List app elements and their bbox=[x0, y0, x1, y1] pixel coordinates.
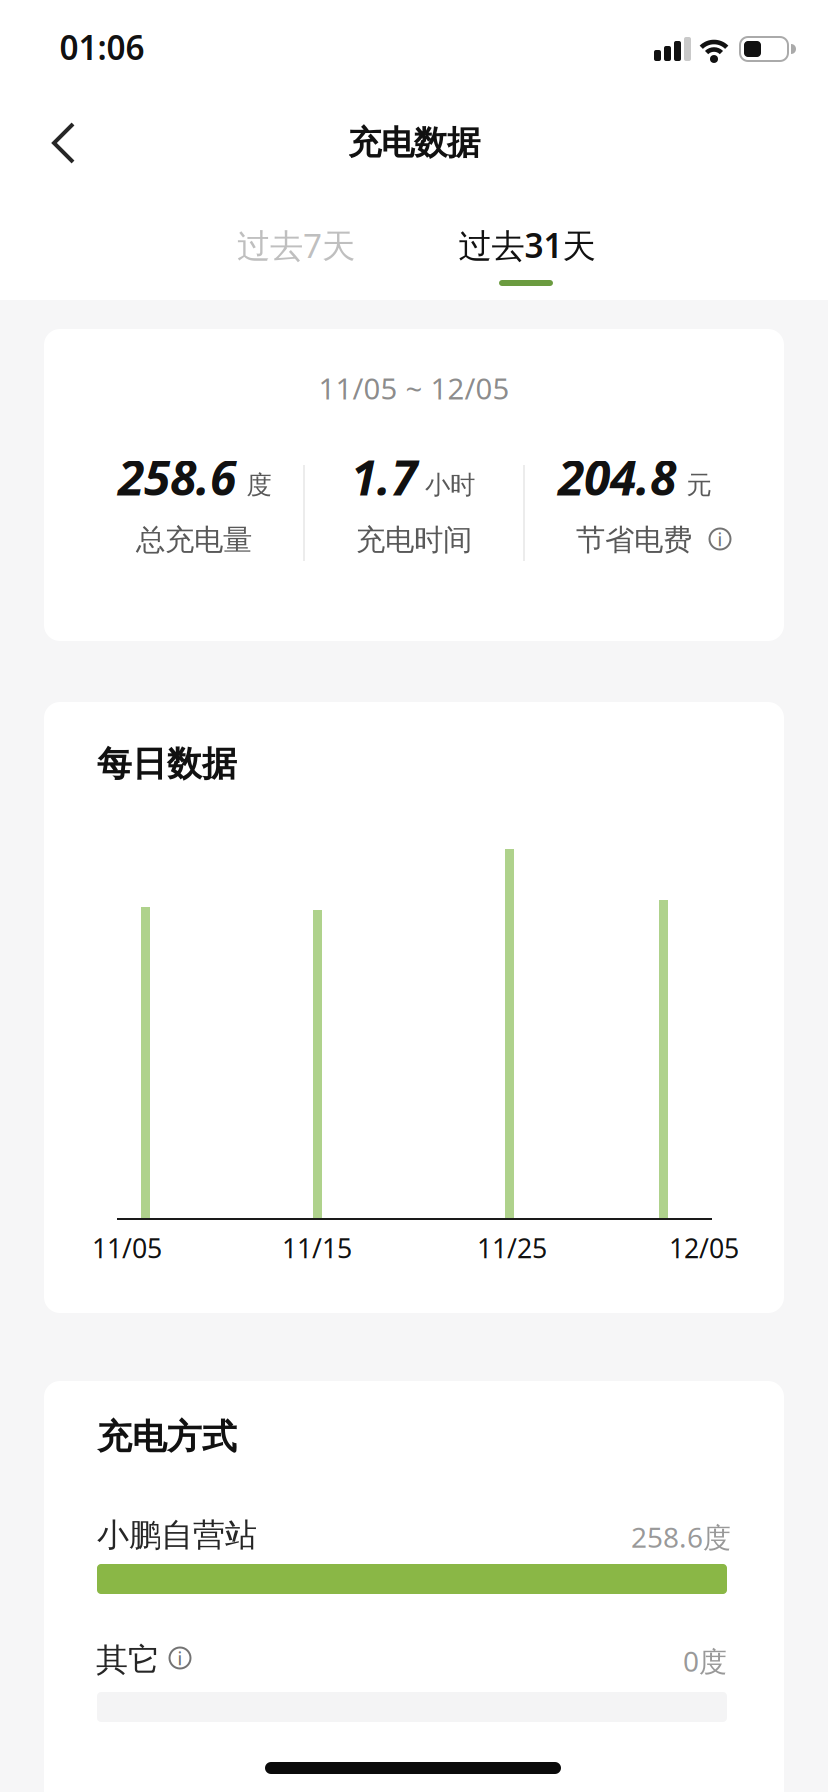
staticText: 11/15 bbox=[282, 1230, 352, 1266]
staticText: 01:06 bbox=[59, 25, 144, 69]
staticText: i bbox=[177, 1647, 182, 1670]
staticText: 小鹏自营站 bbox=[97, 1515, 257, 1555]
staticText: 过去7天 bbox=[237, 223, 355, 267]
staticText: 充电数据 bbox=[348, 122, 480, 163]
staticText: 充电时间 bbox=[356, 522, 472, 558]
staticText: 12/05 bbox=[669, 1230, 739, 1266]
button[interactable]: i bbox=[168, 1646, 192, 1670]
staticText: 258.6度 bbox=[631, 1518, 731, 1556]
staticText: 度 bbox=[246, 469, 271, 500]
staticText: 过去31天 bbox=[458, 223, 595, 267]
staticText: 小时 bbox=[425, 469, 475, 500]
staticText: 0度 bbox=[683, 1642, 727, 1680]
staticText: 每日数据 bbox=[97, 743, 237, 785]
staticText: i bbox=[717, 528, 722, 551]
button[interactable]: 过去31天 bbox=[412, 215, 642, 275]
button[interactable]: 过去7天 bbox=[186, 215, 406, 275]
staticText: 节省电费 bbox=[576, 522, 692, 558]
staticText: 258.6 bbox=[118, 445, 236, 509]
button[interactable] bbox=[51, 122, 77, 164]
staticText: 11/05 bbox=[92, 1230, 162, 1266]
staticText: 204.8 bbox=[558, 445, 676, 509]
staticText: 充电方式 bbox=[97, 1416, 237, 1458]
staticText: 1.7 bbox=[351, 445, 417, 509]
staticText: 总充电量 bbox=[136, 522, 252, 558]
staticText: 其它 bbox=[96, 1640, 160, 1680]
staticText: 11/25 bbox=[477, 1230, 547, 1266]
staticText: 11/05 ~ 12/05 bbox=[318, 368, 509, 407]
staticText: 元 bbox=[686, 469, 711, 500]
button[interactable]: i bbox=[708, 527, 732, 551]
